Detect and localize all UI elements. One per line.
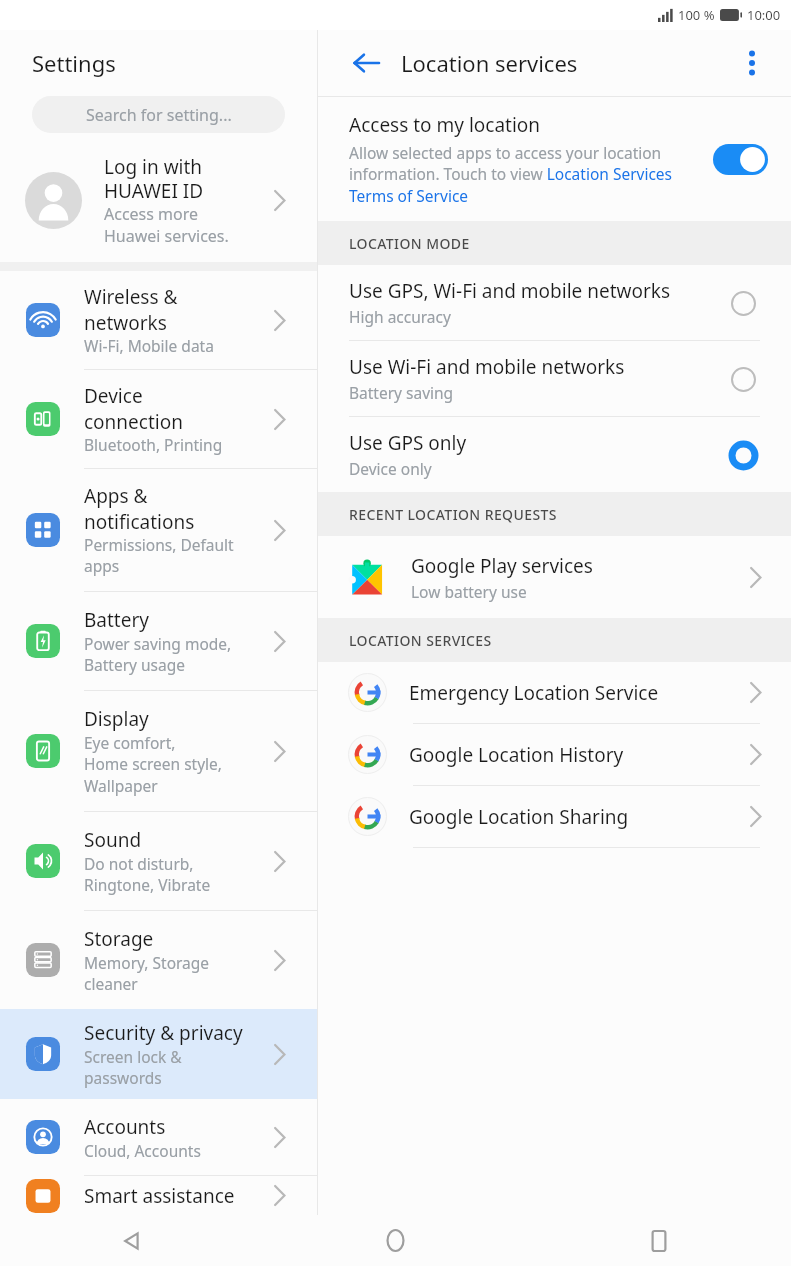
button[interactable]: Apps & notifications bbox=[0, 469, 317, 591]
staticText: Battery bbox=[84, 607, 149, 633]
staticText: Emergency Location Service bbox=[409, 680, 750, 706]
button[interactable]: Storage bbox=[0, 911, 317, 1009]
button[interactable]: Smart assistance bbox=[0, 1176, 317, 1215]
staticText: Apps & notifications bbox=[84, 483, 195, 534]
button[interactable]: Google Location History bbox=[318, 724, 791, 785]
staticText: Search for setting... bbox=[86, 104, 232, 126]
staticText: LOCATION MODE bbox=[349, 234, 470, 253]
staticText: Display bbox=[84, 706, 149, 732]
staticText: Log in with HUAWEI ID bbox=[104, 154, 204, 203]
staticText: Use GPS, Wi-Fi and mobile networks bbox=[349, 278, 671, 304]
staticText: Low battery use bbox=[411, 581, 527, 602]
staticText: Memory, Storage cleaner bbox=[84, 952, 210, 995]
staticText: Battery saving bbox=[349, 382, 454, 403]
button[interactable]: Back bbox=[345, 42, 387, 84]
staticText: Use Wi-Fi and mobile networks bbox=[349, 354, 625, 380]
staticText: Bluetooth, Printing bbox=[84, 434, 223, 455]
staticText: Settings bbox=[32, 48, 116, 78]
button[interactable]: Display bbox=[0, 691, 317, 811]
staticText: Storage bbox=[84, 926, 154, 952]
staticText: Security & privacy bbox=[84, 1020, 243, 1046]
staticText: Google Location Sharing bbox=[409, 804, 750, 830]
staticText: 100 % bbox=[678, 6, 715, 24]
button[interactable]: Back bbox=[0, 1215, 263, 1266]
button[interactable]: Security & privacy bbox=[0, 1009, 317, 1099]
button[interactable]: Google Location Sharing bbox=[318, 786, 791, 847]
button[interactable]: Use Wi-Fi and mobile networks bbox=[721, 357, 765, 401]
button[interactable]: Access to my location toggle bbox=[708, 139, 772, 179]
button[interactable]: Log in with HUAWEI ID bbox=[0, 150, 317, 250]
button[interactable]: Use GPS only bbox=[721, 433, 765, 477]
staticText: Wireless & networks bbox=[84, 284, 178, 335]
staticText: Google Play services bbox=[411, 553, 593, 579]
staticText: RECENT LOCATION REQUESTS bbox=[349, 505, 557, 524]
staticText: LOCATION SERVICES bbox=[349, 631, 492, 650]
staticText: Device only bbox=[349, 458, 432, 479]
staticText: Allow selected apps to access your locat… bbox=[349, 142, 701, 207]
button[interactable]: Access to my location bbox=[318, 97, 791, 221]
button[interactable]: Battery bbox=[0, 592, 317, 690]
staticText: 10:00 bbox=[747, 6, 781, 24]
button[interactable]: More options bbox=[731, 42, 773, 84]
staticText: Location services bbox=[401, 48, 578, 78]
button[interactable]: Emergency Location Service bbox=[318, 662, 791, 723]
staticText: Power saving mode, Battery usage bbox=[84, 633, 232, 676]
button[interactable]: Google Play services bbox=[318, 536, 791, 618]
staticText: Device connection bbox=[84, 383, 183, 434]
staticText: Eye comfort, Home screen style, Wallpape… bbox=[84, 732, 222, 797]
staticText: Google Location History bbox=[409, 742, 750, 768]
staticText: Accounts bbox=[84, 1114, 166, 1140]
staticText: Use GPS only bbox=[349, 430, 467, 456]
button[interactable]: Device connection bbox=[0, 370, 317, 468]
button[interactable]: Search for setting... bbox=[32, 96, 285, 133]
button[interactable]: Accounts bbox=[0, 1099, 317, 1175]
button[interactable]: Use GPS, Wi-Fi and mobile networks bbox=[318, 265, 791, 340]
button[interactable]: Use GPS, Wi-Fi and mobile networks bbox=[721, 281, 765, 325]
staticText: Screen lock & passwords bbox=[84, 1046, 182, 1089]
staticText: Wi-Fi, Mobile data bbox=[84, 335, 214, 356]
button[interactable]: Sound bbox=[0, 812, 317, 910]
staticText: Sound bbox=[84, 827, 142, 853]
button[interactable]: Home bbox=[263, 1215, 527, 1266]
staticText: Access to my location bbox=[349, 112, 541, 138]
button[interactable]: Recent apps bbox=[527, 1215, 791, 1266]
staticText: Smart assistance bbox=[84, 1183, 235, 1209]
button[interactable]: Use GPS only bbox=[318, 417, 791, 492]
staticText: Do not disturb, Ringtone, Vibrate bbox=[84, 853, 211, 896]
staticText: High accuracy bbox=[349, 306, 451, 327]
staticText: Cloud, Accounts bbox=[84, 1140, 201, 1161]
staticText: Permissions, Default apps bbox=[84, 534, 234, 577]
staticText: Access more Huawei services. bbox=[104, 203, 229, 247]
button[interactable]: Wireless & networks bbox=[0, 271, 317, 369]
button[interactable]: Use Wi-Fi and mobile networks bbox=[318, 341, 791, 416]
